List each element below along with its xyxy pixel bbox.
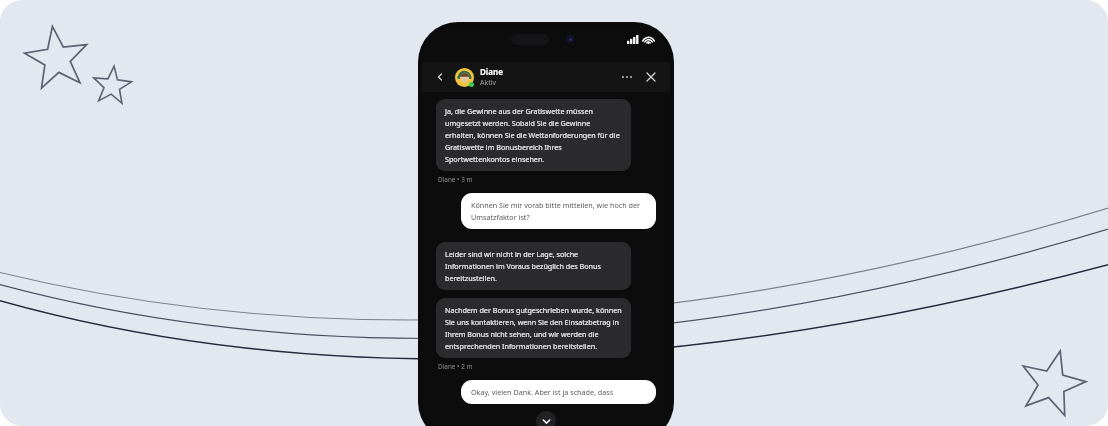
button[interactable]: Scroll to latest message <box>536 411 556 426</box>
button[interactable]: Diane <box>455 66 618 88</box>
button[interactable]: Close <box>642 68 660 86</box>
button[interactable]: Können Sie mir vorab bitte mitteilen, wi… <box>461 193 656 229</box>
staticText: Nachdem der Bonus gutgeschrieben wurde, … <box>445 305 622 351</box>
staticText: Diane • 2 m <box>438 362 473 371</box>
staticText: Leider sind wir nicht in der Lage, solch… <box>445 249 622 283</box>
staticText: Diane • 3 m <box>438 175 473 184</box>
button[interactable]: Ja, die Gewinne aus der Gratiswette müss… <box>436 99 631 171</box>
button[interactable]: Leider sind wir nicht in der Lage, solch… <box>436 242 631 290</box>
button[interactable]: Okay, vielen Dank. Aber ist ja schade, d… <box>461 380 656 404</box>
staticText: Aktiv <box>480 78 497 88</box>
staticText: Ja, die Gewinne aus der Gratiswette müss… <box>445 106 622 164</box>
staticText: Okay, vielen Dank. Aber ist ja schade, d… <box>471 387 614 397</box>
staticText: Können Sie mir vorab bitte mitteilen, wi… <box>471 200 646 222</box>
staticText: Diane <box>480 66 504 77</box>
button[interactable]: More options <box>618 68 636 86</box>
button[interactable]: Nachdem der Bonus gutgeschrieben wurde, … <box>436 298 631 358</box>
button[interactable]: Back <box>432 69 448 85</box>
